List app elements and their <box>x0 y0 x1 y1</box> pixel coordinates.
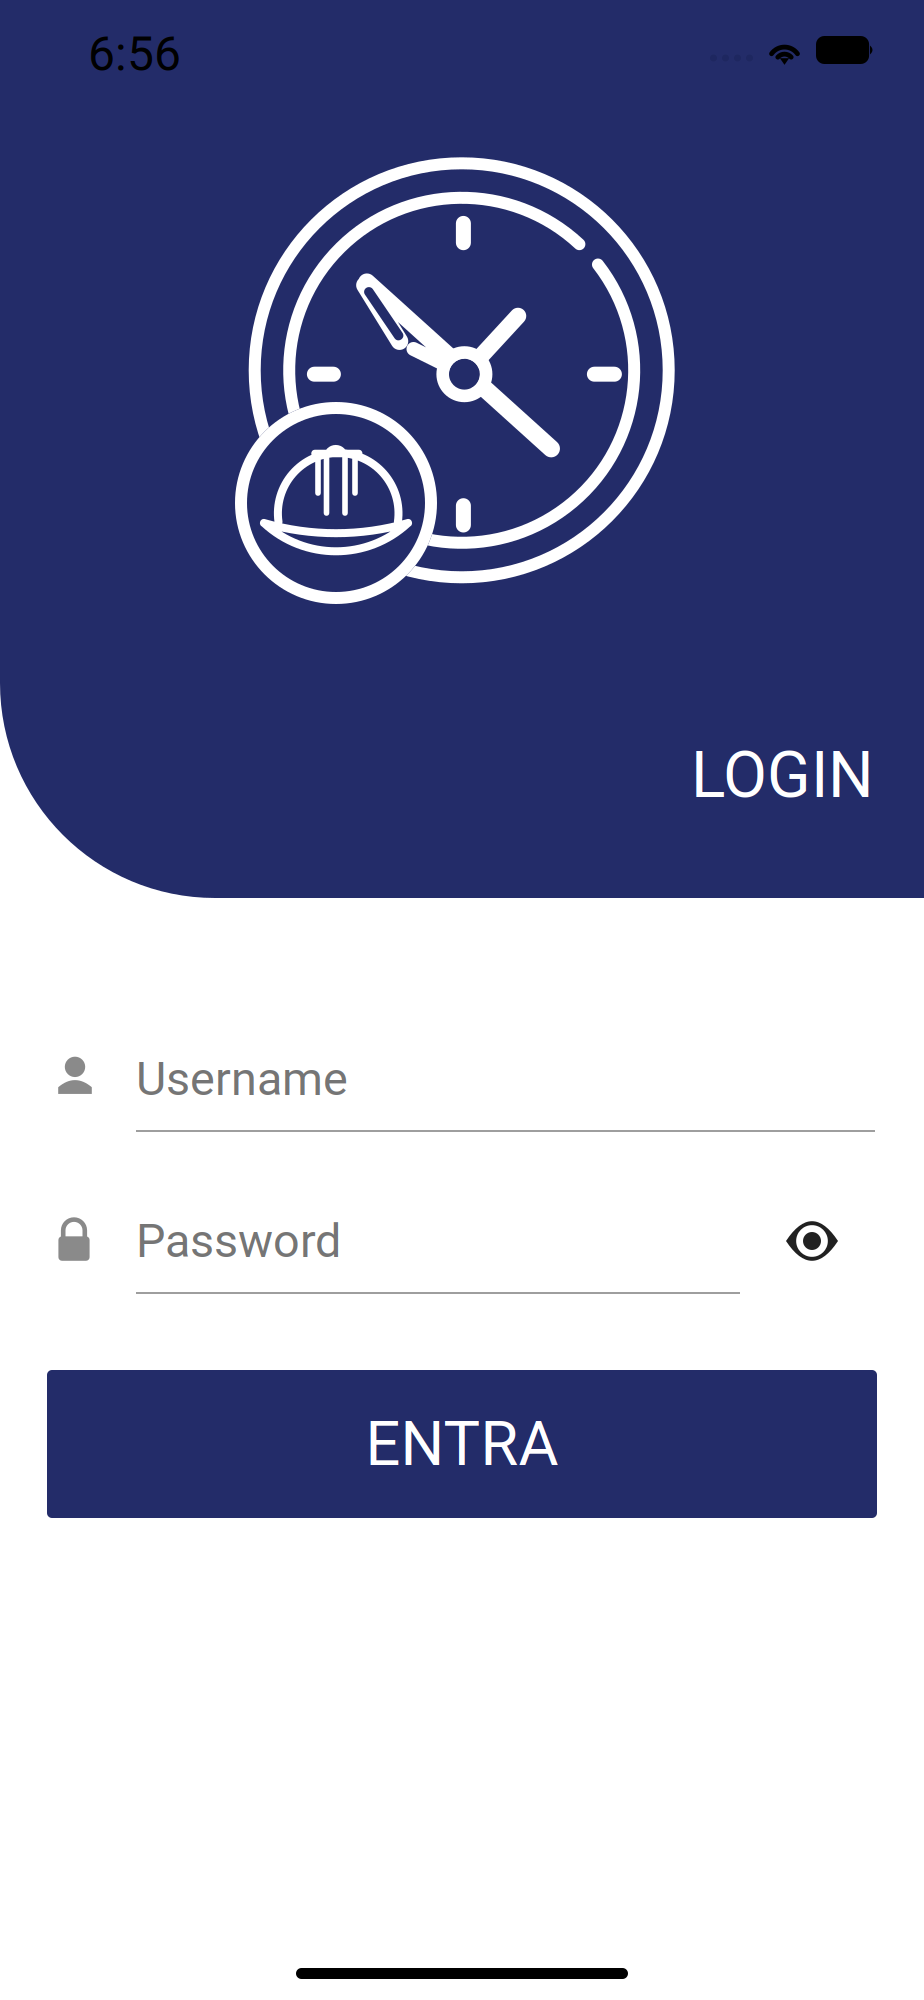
staticText: Username <box>136 1052 348 1106</box>
staticText: ENTRA <box>365 1408 558 1480</box>
staticText: 6:56 <box>88 26 181 82</box>
staticText: Password <box>136 1214 341 1268</box>
button[interactable]: Show password <box>786 1223 838 1259</box>
staticText: LOGIN <box>691 737 874 812</box>
button[interactable]: ENTRA <box>47 1370 877 1518</box>
